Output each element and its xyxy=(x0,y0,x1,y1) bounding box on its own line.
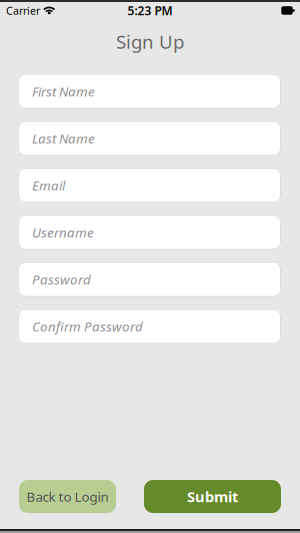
staticText: First Name xyxy=(32,82,95,100)
staticText: Back to Login xyxy=(26,488,108,505)
staticText: Username xyxy=(32,223,94,241)
button[interactable]: Confirm Password xyxy=(18,309,281,344)
button[interactable]: Username xyxy=(18,215,281,250)
button[interactable]: Submit xyxy=(144,480,281,513)
button[interactable]: Password xyxy=(18,262,281,297)
staticText: Carrier xyxy=(6,3,40,18)
button[interactable]: Email xyxy=(18,168,281,203)
staticText: Submit xyxy=(187,487,238,506)
staticText: Confirm Password xyxy=(32,317,143,335)
staticText: Sign Up xyxy=(116,29,184,54)
button[interactable]: First Name xyxy=(18,74,281,109)
staticText: Email xyxy=(32,176,65,194)
button[interactable]: Back to Login xyxy=(19,480,116,513)
staticText: Last Name xyxy=(32,129,95,147)
staticText: 5:23 PM xyxy=(127,2,172,18)
button[interactable]: Last Name xyxy=(18,121,281,156)
staticText: Password xyxy=(32,270,91,288)
